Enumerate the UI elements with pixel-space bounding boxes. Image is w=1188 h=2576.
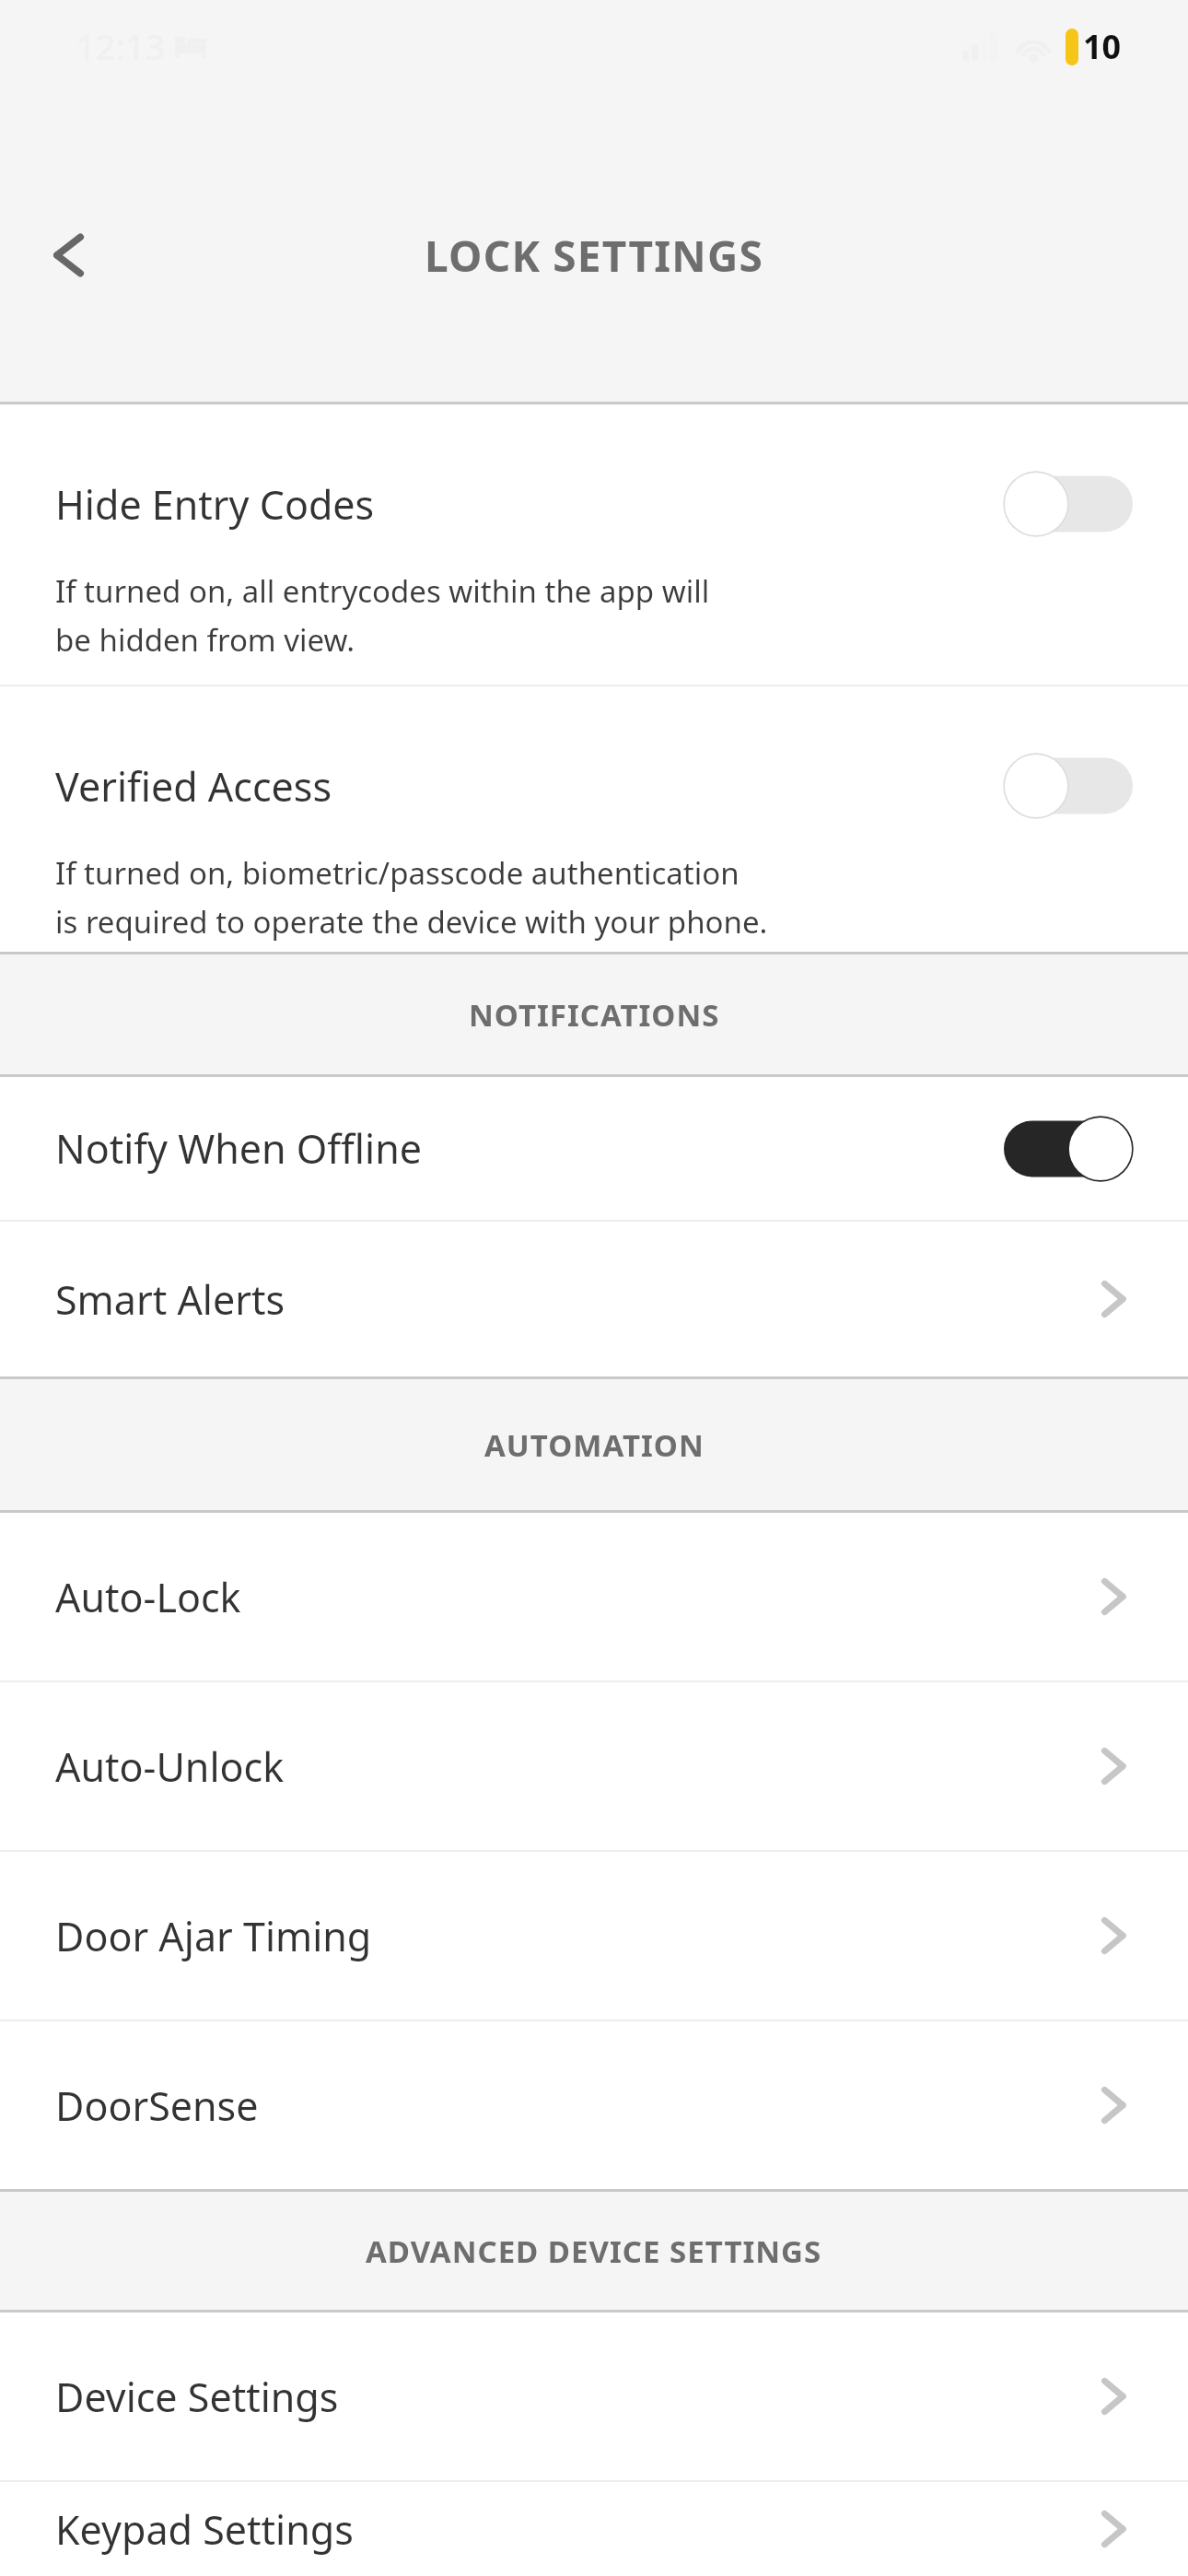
button[interactable]: Auto-Lock [0,1513,1188,1680]
staticText: Auto-Lock [55,1570,241,1624]
staticText: Door Ajar Timing [55,1909,372,1963]
button[interactable]: Hide Entry Codes [0,404,1188,685]
button[interactable]: Toggle off [1004,469,1133,539]
staticText: If turned on, all entrycodes within the … [55,570,710,612]
staticText: If turned on, biometric/passcode authent… [55,852,740,894]
staticText: be hidden from view. [55,619,355,661]
button[interactable]: Back [18,205,120,306]
button[interactable]: Device Settings [0,2313,1188,2480]
staticText: Keypad Settings [55,2502,354,2557]
staticText: ADVANCED DEVICE SETTINGS [366,2231,822,2272]
button[interactable]: Auto-Unlock [0,1682,1188,1850]
staticText: Verified Access [55,759,1004,814]
staticText: Notify When Offline [55,1121,1004,1176]
staticText: AUTOMATION [484,1424,705,1466]
button[interactable]: Verified Access [0,686,1188,952]
button[interactable]: Toggle off [1004,751,1133,821]
staticText: Hide Entry Codes [55,477,1004,532]
staticText: NOTIFICATIONS [469,994,720,1036]
staticText: 10 [1083,24,1122,69]
staticText: Device Settings [55,2370,339,2424]
staticText: Smart Alerts [55,1272,285,1327]
button[interactable]: Toggle on [1004,1114,1133,1184]
button[interactable]: Smart Alerts [0,1222,1188,1376]
staticText: Auto-Unlock [55,1739,285,1794]
button[interactable]: Door Ajar Timing [0,1852,1188,2020]
button[interactable]: Keypad Settings [0,2482,1188,2576]
staticText: is required to operate the device with y… [55,901,768,943]
staticText: DoorSense [55,2078,259,2133]
button[interactable]: Notify When Offline [0,1077,1188,1220]
button[interactable]: DoorSense [0,2021,1188,2189]
staticText: LOCK SETTINGS [0,227,1188,285]
